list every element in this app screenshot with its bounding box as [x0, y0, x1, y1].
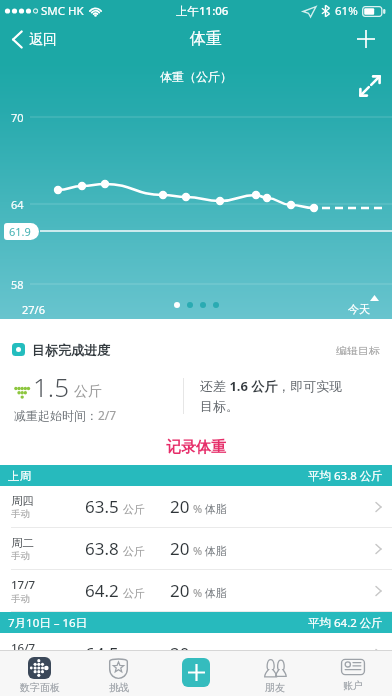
staticText: 目标完成进度	[32, 342, 110, 358]
button[interactable]: 返回	[9, 24, 60, 55]
staticText: 朋友	[265, 681, 285, 694]
button[interactable]: 朋友	[236, 651, 314, 696]
staticText: 周二	[11, 536, 34, 550]
staticText: 公斤	[123, 649, 145, 663]
staticText: 20	[170, 642, 190, 665]
staticText: 记录体重	[166, 438, 226, 457]
button[interactable]: 周四	[0, 486, 392, 528]
staticText: 数字面板	[20, 681, 60, 694]
button[interactable]: 账户	[314, 651, 392, 696]
staticText: 挑战	[109, 681, 129, 694]
staticText: 70	[11, 110, 24, 125]
staticText: 体脂	[205, 544, 227, 558]
button[interactable]: 16/7	[0, 633, 392, 675]
staticText: 上周	[8, 469, 31, 483]
staticText: 1.5	[33, 369, 70, 404]
staticText: 平均 64.2 公斤	[308, 615, 383, 631]
staticText: 20	[170, 495, 190, 518]
staticText: 58	[11, 277, 24, 292]
staticText: 27/6	[22, 302, 45, 317]
staticText: %	[193, 648, 203, 663]
staticText: SMC HK	[41, 3, 84, 19]
staticText: 17/7	[11, 577, 36, 593]
staticText: 64	[11, 197, 24, 212]
staticText: %	[193, 501, 203, 516]
button[interactable]: Add entry	[182, 658, 210, 687]
staticText: 体重（公斤）	[160, 69, 232, 84]
staticText: %	[193, 543, 203, 558]
staticText: 63.8	[85, 537, 119, 560]
button[interactable]: Expand chart	[358, 74, 382, 98]
staticText: 7月10日 – 16日	[8, 615, 88, 631]
staticText: 手动	[11, 656, 30, 668]
button[interactable]: Add	[352, 25, 380, 53]
staticText: 平均 63.8 公斤	[308, 468, 383, 484]
staticText: 手动	[11, 593, 30, 605]
staticText: 64.5	[85, 642, 119, 665]
staticText: 61%	[335, 3, 358, 19]
staticText: 体脂	[205, 586, 227, 600]
staticText: 减重起始时间：	[14, 408, 98, 423]
staticText: 返回	[29, 31, 57, 49]
button[interactable]: 周二	[0, 528, 392, 570]
button[interactable]: 17/7	[0, 570, 392, 612]
staticText: 公斤	[123, 502, 145, 516]
staticText: 2/7	[98, 407, 117, 423]
staticText: 编辑目标	[336, 344, 380, 355]
staticText: %	[193, 585, 203, 600]
staticText: 还差 1.6 公斤，即可实现目标。	[200, 377, 352, 415]
staticText: 账户	[343, 679, 363, 692]
staticText: 公斤	[74, 383, 102, 401]
staticText: 公斤	[123, 544, 145, 558]
staticText: 20	[170, 537, 190, 560]
staticText: 周四	[11, 494, 34, 508]
button[interactable]: 记录体重	[0, 424, 392, 465]
staticText: 20	[170, 579, 190, 602]
staticText: 今天	[348, 302, 370, 316]
button[interactable]: 编辑目标	[334, 339, 382, 360]
staticText: 体重	[190, 29, 222, 49]
staticText: 64.2	[85, 579, 119, 602]
button[interactable]: 数字面板	[0, 651, 79, 696]
staticText: 体脂	[205, 649, 227, 663]
staticText: 61.9	[9, 224, 31, 239]
button[interactable]: 挑战	[79, 651, 158, 696]
staticText: 上午11:06	[176, 3, 229, 19]
staticText: 16/7	[11, 640, 36, 656]
staticText: 63.5	[85, 495, 119, 518]
staticText: 体脂	[205, 502, 227, 516]
staticText: 手动	[11, 550, 30, 562]
staticText: 手动	[11, 508, 30, 520]
staticText: 公斤	[123, 586, 145, 600]
